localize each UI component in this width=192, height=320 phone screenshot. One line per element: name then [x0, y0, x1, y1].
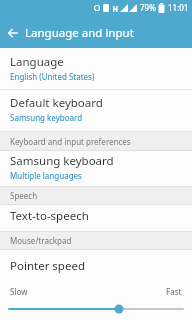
button[interactable]: Samsung keyboard: [0, 151, 192, 186]
staticText: Multiple languages: [10, 170, 82, 181]
button[interactable]: Language: [0, 48, 192, 90]
staticText: Keyboard and input preferences: [10, 136, 131, 147]
staticText: Default keyboard: [10, 95, 103, 111]
button[interactable]: Default keyboard: [0, 90, 192, 131]
staticText: 79%: [140, 2, 156, 13]
button[interactable]: [0, 18, 25, 48]
staticText: 11:01: [168, 2, 189, 13]
staticText: Fast: [166, 286, 182, 297]
staticText: Slow: [10, 286, 28, 297]
staticText: Mouse/trackpad: [10, 235, 72, 246]
staticText: Language and input: [25, 25, 134, 41]
button[interactable]: Pointer speed: [0, 250, 192, 320]
staticText: Language: [10, 54, 64, 70]
staticText: English (United States): [10, 71, 95, 82]
staticText: Speech: [10, 190, 38, 201]
button[interactable]: Text-to-speech: [0, 205, 192, 231]
staticText: Pointer speed: [10, 258, 85, 274]
staticText: Text-to-speech: [10, 208, 89, 224]
staticText: Samsung keyboard: [10, 153, 114, 169]
staticText: Samsung keyboard: [10, 112, 83, 123]
